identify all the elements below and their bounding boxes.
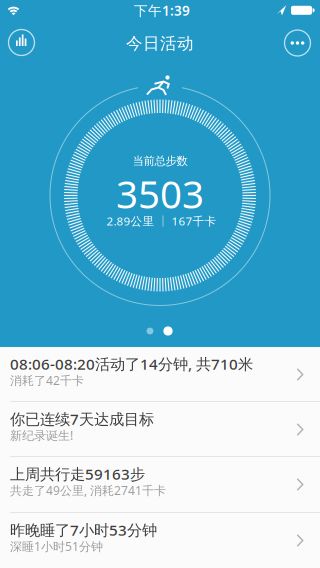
staticText: 当前总步数 bbox=[132, 154, 187, 168]
button[interactable]: 统计 bbox=[5, 26, 37, 58]
staticText: 3503 bbox=[116, 167, 204, 220]
staticText: 下午1:39 bbox=[134, 1, 190, 20]
button[interactable]: 上周共行走59163步 bbox=[0, 457, 320, 513]
button[interactable]: 更多 bbox=[281, 27, 313, 59]
button[interactable]: 08:06-08:20活动了14分钟, 共710米 bbox=[0, 347, 320, 402]
staticText: 2.89公里 bbox=[106, 213, 154, 229]
staticText: 消耗了42千卡 bbox=[10, 372, 84, 388]
staticText: 上周共行走59163步 bbox=[10, 463, 145, 484]
button[interactable]: 你已连续7天达成目标 bbox=[0, 402, 320, 457]
staticText: 08:06-08:20活动了14分钟, 共710米 bbox=[10, 353, 253, 374]
staticText: 你已连续7天达成目标 bbox=[10, 408, 154, 429]
staticText: 今日活动 bbox=[126, 33, 194, 54]
staticText: 共走了49公里, 消耗2741千卡 bbox=[10, 482, 166, 498]
button[interactable]: 昨晚睡了7小时53分钟 bbox=[0, 513, 320, 568]
staticText: 深睡1小时51分钟 bbox=[10, 538, 103, 554]
staticText: 昨晚睡了7小时53分钟 bbox=[10, 519, 157, 540]
staticText: 新纪录诞生! bbox=[10, 427, 73, 443]
staticText: 167千卡 bbox=[171, 213, 216, 229]
